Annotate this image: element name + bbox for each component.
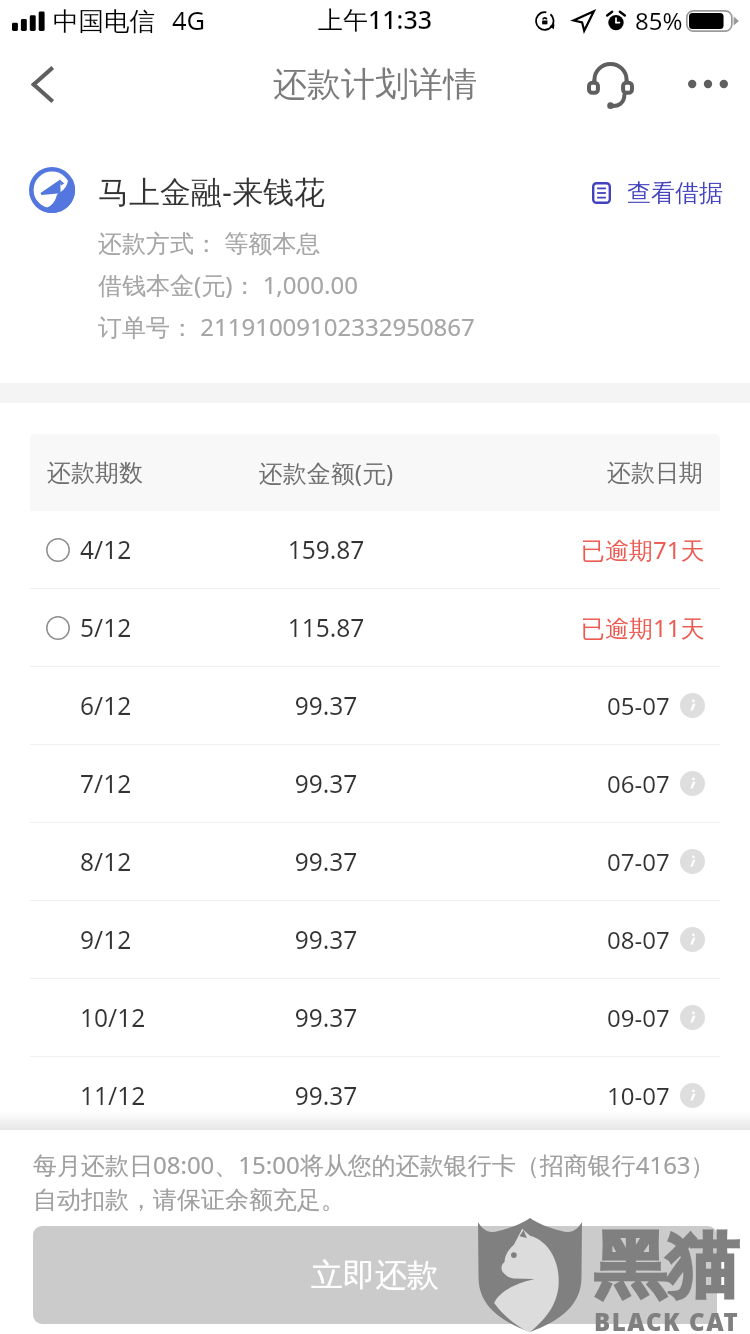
button[interactable]: 立即还款 xyxy=(33,1226,717,1324)
staticText: 09-07 xyxy=(607,1001,670,1034)
button[interactable]: 客服 xyxy=(572,40,649,128)
staticText: 立即还款 xyxy=(311,1255,439,1295)
button[interactable]: 11/12 xyxy=(30,1057,720,1134)
staticText: 10/12 xyxy=(80,1001,146,1034)
staticText: 12/12 xyxy=(80,1157,146,1190)
staticText: 11/12 xyxy=(80,1079,146,1112)
staticText: 99.37 xyxy=(226,1157,426,1190)
staticText: 5/12 xyxy=(80,611,132,644)
button[interactable]: 7/12 xyxy=(30,745,720,822)
staticText: 7/12 xyxy=(80,767,132,800)
staticText: 8/12 xyxy=(80,845,132,878)
staticText: 订单号： 21191009102332950867 xyxy=(98,310,475,343)
staticText: 自动扣款，请保证余额充足。 xyxy=(33,1185,345,1215)
button[interactable]: 9/12 xyxy=(30,901,720,978)
button[interactable]: 返回 xyxy=(0,40,84,128)
button[interactable]: 更多 xyxy=(664,40,750,128)
staticText: BLACK CAT xyxy=(594,1305,740,1334)
button[interactable]: 6/12 xyxy=(30,667,720,744)
staticText: 每月还款日08:00、15:00将从您的还款银行卡（招商银行4163） xyxy=(33,1148,715,1181)
staticText: 黑猫 xyxy=(594,1221,738,1312)
staticText: 还款计划详情 xyxy=(273,63,477,106)
staticText: 159.87 xyxy=(226,533,426,566)
staticText: 05-07 xyxy=(607,689,670,722)
staticText: 06-07 xyxy=(607,767,670,800)
staticText: 9/12 xyxy=(80,923,132,956)
staticText: 99.37 xyxy=(226,845,426,878)
staticText: 99.37 xyxy=(226,923,426,956)
staticText: 85% xyxy=(635,4,683,37)
staticText: 借钱本金(元)： 1,000.00 xyxy=(98,268,358,301)
button[interactable]: 5/12 xyxy=(30,589,720,666)
staticText: 还款方式： 等额本息 xyxy=(98,226,321,259)
button[interactable]: 查看借据 xyxy=(592,178,723,208)
button[interactable]: 4/12 xyxy=(30,511,720,588)
staticText: 中国电信 xyxy=(53,5,155,37)
staticText: 还款日期 xyxy=(607,458,703,488)
staticText: 99.37 xyxy=(226,689,426,722)
staticText: 还款金额(元) xyxy=(226,456,426,489)
staticText: 11-07 xyxy=(607,1157,670,1190)
staticText: 马上金融-来钱花 xyxy=(98,170,325,212)
staticText: 已逾期71天 xyxy=(581,533,705,566)
button[interactable]: 10/12 xyxy=(30,979,720,1056)
staticText: 上午11:33 xyxy=(318,2,433,36)
staticText: 99.37 xyxy=(226,1001,426,1034)
staticText: 10-07 xyxy=(607,1079,670,1112)
staticText: 115.87 xyxy=(226,611,426,644)
staticText: 4G xyxy=(172,3,206,38)
button[interactable]: 12/12 xyxy=(30,1135,720,1212)
staticText: 6/12 xyxy=(80,689,132,722)
staticText: 还款期数 xyxy=(47,458,143,488)
staticText: 4/12 xyxy=(80,533,132,566)
button[interactable]: 8/12 xyxy=(30,823,720,900)
staticText: 查看借据 xyxy=(627,178,723,208)
staticText: 99.37 xyxy=(226,1079,426,1112)
staticText: 已逾期11天 xyxy=(581,611,705,644)
staticText: 08-07 xyxy=(607,923,670,956)
staticText: 99.37 xyxy=(226,767,426,800)
staticText: 07-07 xyxy=(607,845,670,878)
